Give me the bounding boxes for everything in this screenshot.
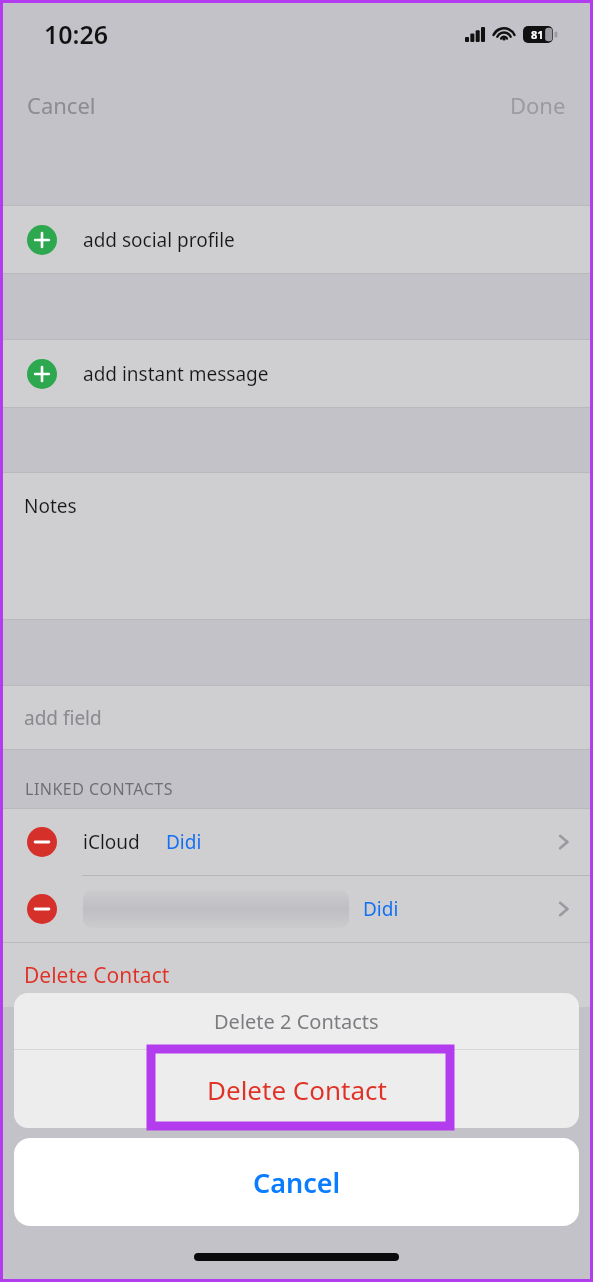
staticText: 10:26 bbox=[44, 17, 109, 51]
button[interactable]: Cancel bbox=[23, 86, 100, 124]
staticText: Delete Contact bbox=[24, 961, 170, 990]
button[interactable]: iCloud bbox=[0, 809, 593, 875]
staticText: Didi bbox=[363, 896, 399, 922]
staticText: add field bbox=[24, 705, 102, 731]
staticText: add social profile bbox=[83, 227, 235, 253]
staticText: Done bbox=[510, 90, 566, 120]
staticText: Didi bbox=[166, 829, 202, 855]
staticText: 81 bbox=[531, 27, 544, 42]
staticText: Cancel bbox=[253, 1164, 341, 1201]
button[interactable]: Delete Contact bbox=[14, 1050, 579, 1128]
button[interactable]: add instant message bbox=[0, 340, 593, 407]
staticText: Delete 2 Contacts bbox=[214, 1008, 379, 1035]
button[interactable]: Delete 2 Contacts bbox=[14, 993, 579, 1049]
staticText: Notes bbox=[24, 493, 77, 519]
button[interactable]: add social profile bbox=[0, 206, 593, 273]
button[interactable]: Done bbox=[506, 86, 570, 124]
button[interactable]: add field bbox=[0, 686, 593, 749]
staticText: add instant message bbox=[83, 361, 269, 387]
button[interactable]: Notes bbox=[0, 473, 593, 619]
staticText: LINKED CONTACTS bbox=[25, 778, 174, 800]
staticText: iCloud bbox=[83, 829, 140, 855]
button[interactable]: Cancel bbox=[14, 1138, 579, 1226]
staticText: Delete Contact bbox=[207, 1072, 387, 1107]
button[interactable]: Didi bbox=[0, 876, 593, 942]
staticText: Cancel bbox=[27, 90, 96, 120]
